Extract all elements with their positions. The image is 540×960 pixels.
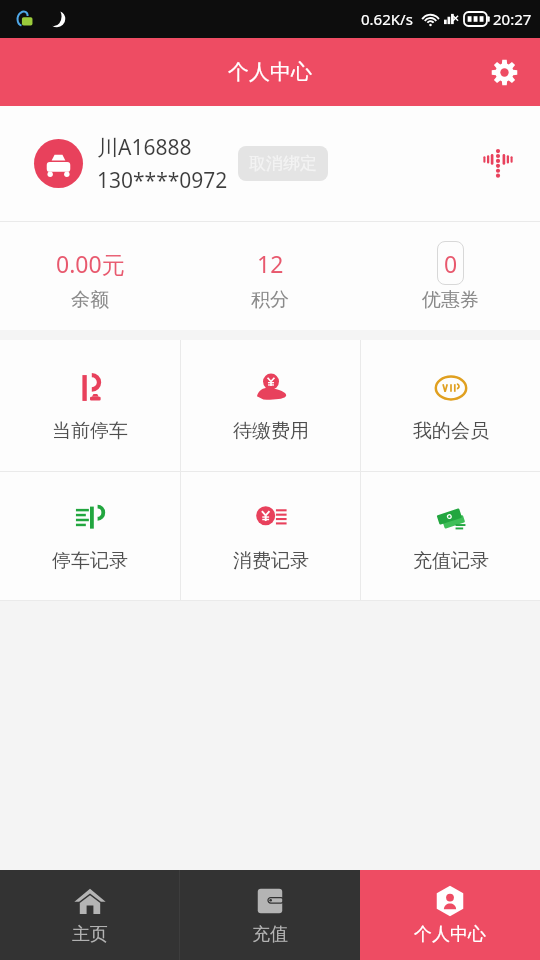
staticText: 川A16888 (97, 133, 192, 162)
button[interactable]: 充值 (180, 870, 360, 960)
staticText: 余额 (71, 288, 109, 312)
staticText: 取消绑定 (249, 153, 317, 174)
staticText: 我的会员 (413, 419, 489, 443)
staticText: 主页 (72, 923, 108, 946)
staticText: 130****0972 (97, 166, 228, 195)
button[interactable]: Settings (482, 50, 526, 94)
button[interactable]: 充值记录 (361, 472, 540, 600)
staticText: 消费记录 (233, 549, 309, 573)
button[interactable]: 0.00元 (0, 222, 180, 330)
button[interactable]: 消费记录 (181, 472, 360, 600)
button[interactable]: 待缴费用 (181, 340, 360, 471)
button[interactable]: 主页 (0, 870, 179, 960)
button[interactable]: Signal (474, 140, 522, 188)
button[interactable]: 个人中心 (360, 870, 540, 960)
staticText: 0.62K/s (361, 9, 413, 29)
staticText: 个人中心 (228, 59, 312, 85)
staticText: 个人中心 (414, 923, 486, 946)
staticText: 20:27 (493, 9, 532, 29)
staticText: 0.00元 (56, 248, 125, 279)
button[interactable]: 停车记录 (0, 472, 180, 600)
button[interactable]: 12 (180, 222, 360, 330)
button[interactable]: 我的会员 (361, 340, 540, 471)
staticText: 0 (444, 248, 458, 279)
button[interactable]: 当前停车 (0, 340, 180, 471)
staticText: 积分 (251, 288, 289, 312)
staticText: 待缴费用 (233, 419, 309, 443)
button[interactable]: 川A16888 (0, 106, 540, 221)
button[interactable]: 取消绑定 (238, 146, 328, 181)
staticText: 当前停车 (52, 419, 128, 443)
button[interactable]: 0 (360, 222, 540, 330)
staticText: 12 (257, 248, 284, 279)
staticText: 优惠券 (422, 288, 479, 312)
staticText: 充值记录 (413, 549, 489, 573)
staticText: 充值 (252, 923, 288, 946)
staticText: 停车记录 (52, 549, 128, 573)
